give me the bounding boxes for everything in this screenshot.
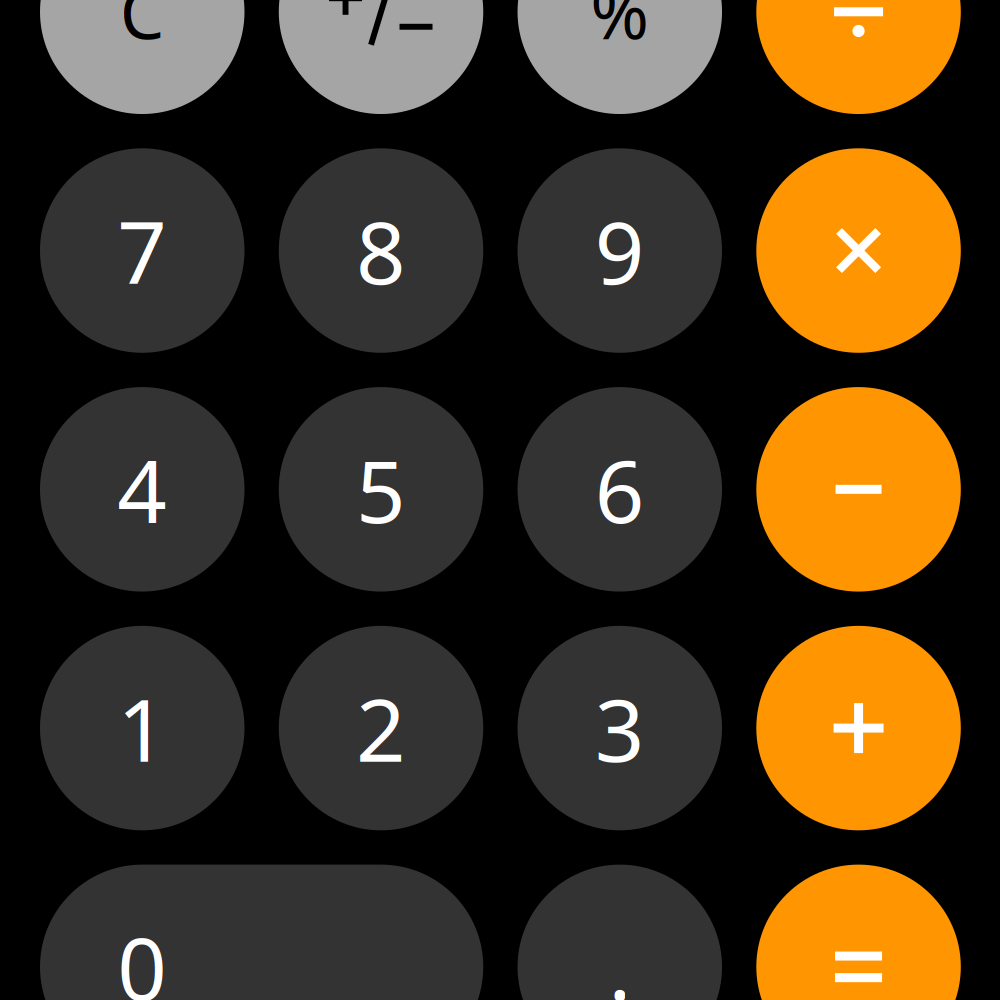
button[interactable]: Decimal point xyxy=(517,865,722,1000)
staticText: 1 xyxy=(117,670,167,786)
staticText: 9 xyxy=(595,193,645,308)
staticText: 2 xyxy=(356,670,406,786)
button[interactable]: Clear xyxy=(40,0,244,114)
button[interactable]: 8 xyxy=(279,148,483,353)
button[interactable]: 2 xyxy=(279,626,483,830)
button[interactable]: 7 xyxy=(40,148,244,353)
button[interactable]: Multiply xyxy=(756,148,961,353)
staticText: . xyxy=(608,909,631,1000)
button[interactable]: Plus Minus xyxy=(279,0,483,114)
staticText: 7 xyxy=(117,193,167,308)
staticText: 3 xyxy=(595,670,645,786)
button[interactable]: Subtract xyxy=(756,387,961,592)
staticText: 0 xyxy=(117,909,167,1000)
button[interactable]: 4 xyxy=(40,387,244,592)
button[interactable]: 3 xyxy=(517,626,722,830)
staticText: C xyxy=(120,0,165,59)
staticText: 6 xyxy=(595,432,645,547)
staticText: 8 xyxy=(356,193,406,308)
button[interactable]: Add xyxy=(756,626,961,830)
staticText: % xyxy=(590,0,649,59)
button[interactable]: 6 xyxy=(517,387,722,592)
button[interactable]: 9 xyxy=(517,148,722,353)
button[interactable]: 1 xyxy=(40,626,244,830)
button[interactable]: Equals xyxy=(756,865,961,1000)
staticText: 4 xyxy=(117,432,167,547)
button[interactable]: 5 xyxy=(279,387,483,592)
button[interactable]: Divide xyxy=(756,0,961,114)
staticText: 5 xyxy=(356,432,406,547)
button[interactable]: Percent xyxy=(517,0,722,114)
button[interactable]: Zero xyxy=(40,865,483,1000)
